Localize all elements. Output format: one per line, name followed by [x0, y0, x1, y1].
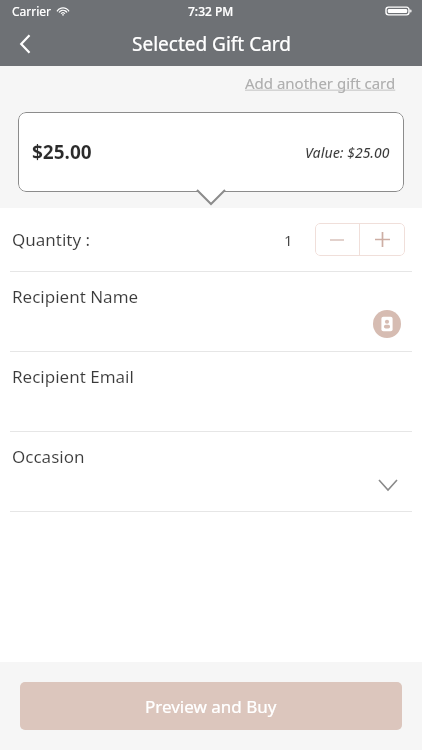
- button[interactable]: Recipient Email: [0, 352, 422, 431]
- button[interactable]: Choose contact: [372, 309, 402, 339]
- button[interactable]: Occasion: [0, 432, 422, 511]
- staticText: Carrier: [12, 3, 52, 19]
- staticText: Add another gift card: [245, 73, 396, 93]
- staticText: $25.00: [32, 139, 92, 165]
- button[interactable]: Recipient Name: [0, 272, 422, 351]
- button[interactable]: Increase quantity: [360, 223, 405, 256]
- button[interactable]: Add another gift card: [243, 69, 398, 97]
- staticText: 1: [284, 230, 293, 250]
- staticText: Recipient Name: [12, 285, 139, 308]
- button[interactable]: Preview and Buy: [20, 682, 402, 730]
- staticText: 7:32 PM: [188, 3, 234, 19]
- staticText: Value: $25.00: [305, 143, 390, 162]
- button[interactable]: $25.00: [18, 112, 404, 192]
- button[interactable]: Decrease quantity: [315, 223, 359, 256]
- button[interactable]: Back: [0, 22, 52, 66]
- button[interactable]: Select occasion: [374, 471, 402, 499]
- staticText: Quantity :: [12, 228, 91, 251]
- staticText: Preview and Buy: [145, 695, 277, 718]
- staticText: Recipient Email: [12, 365, 134, 388]
- staticText: Selected Gift Card: [132, 31, 291, 57]
- staticText: Occasion: [12, 445, 85, 468]
